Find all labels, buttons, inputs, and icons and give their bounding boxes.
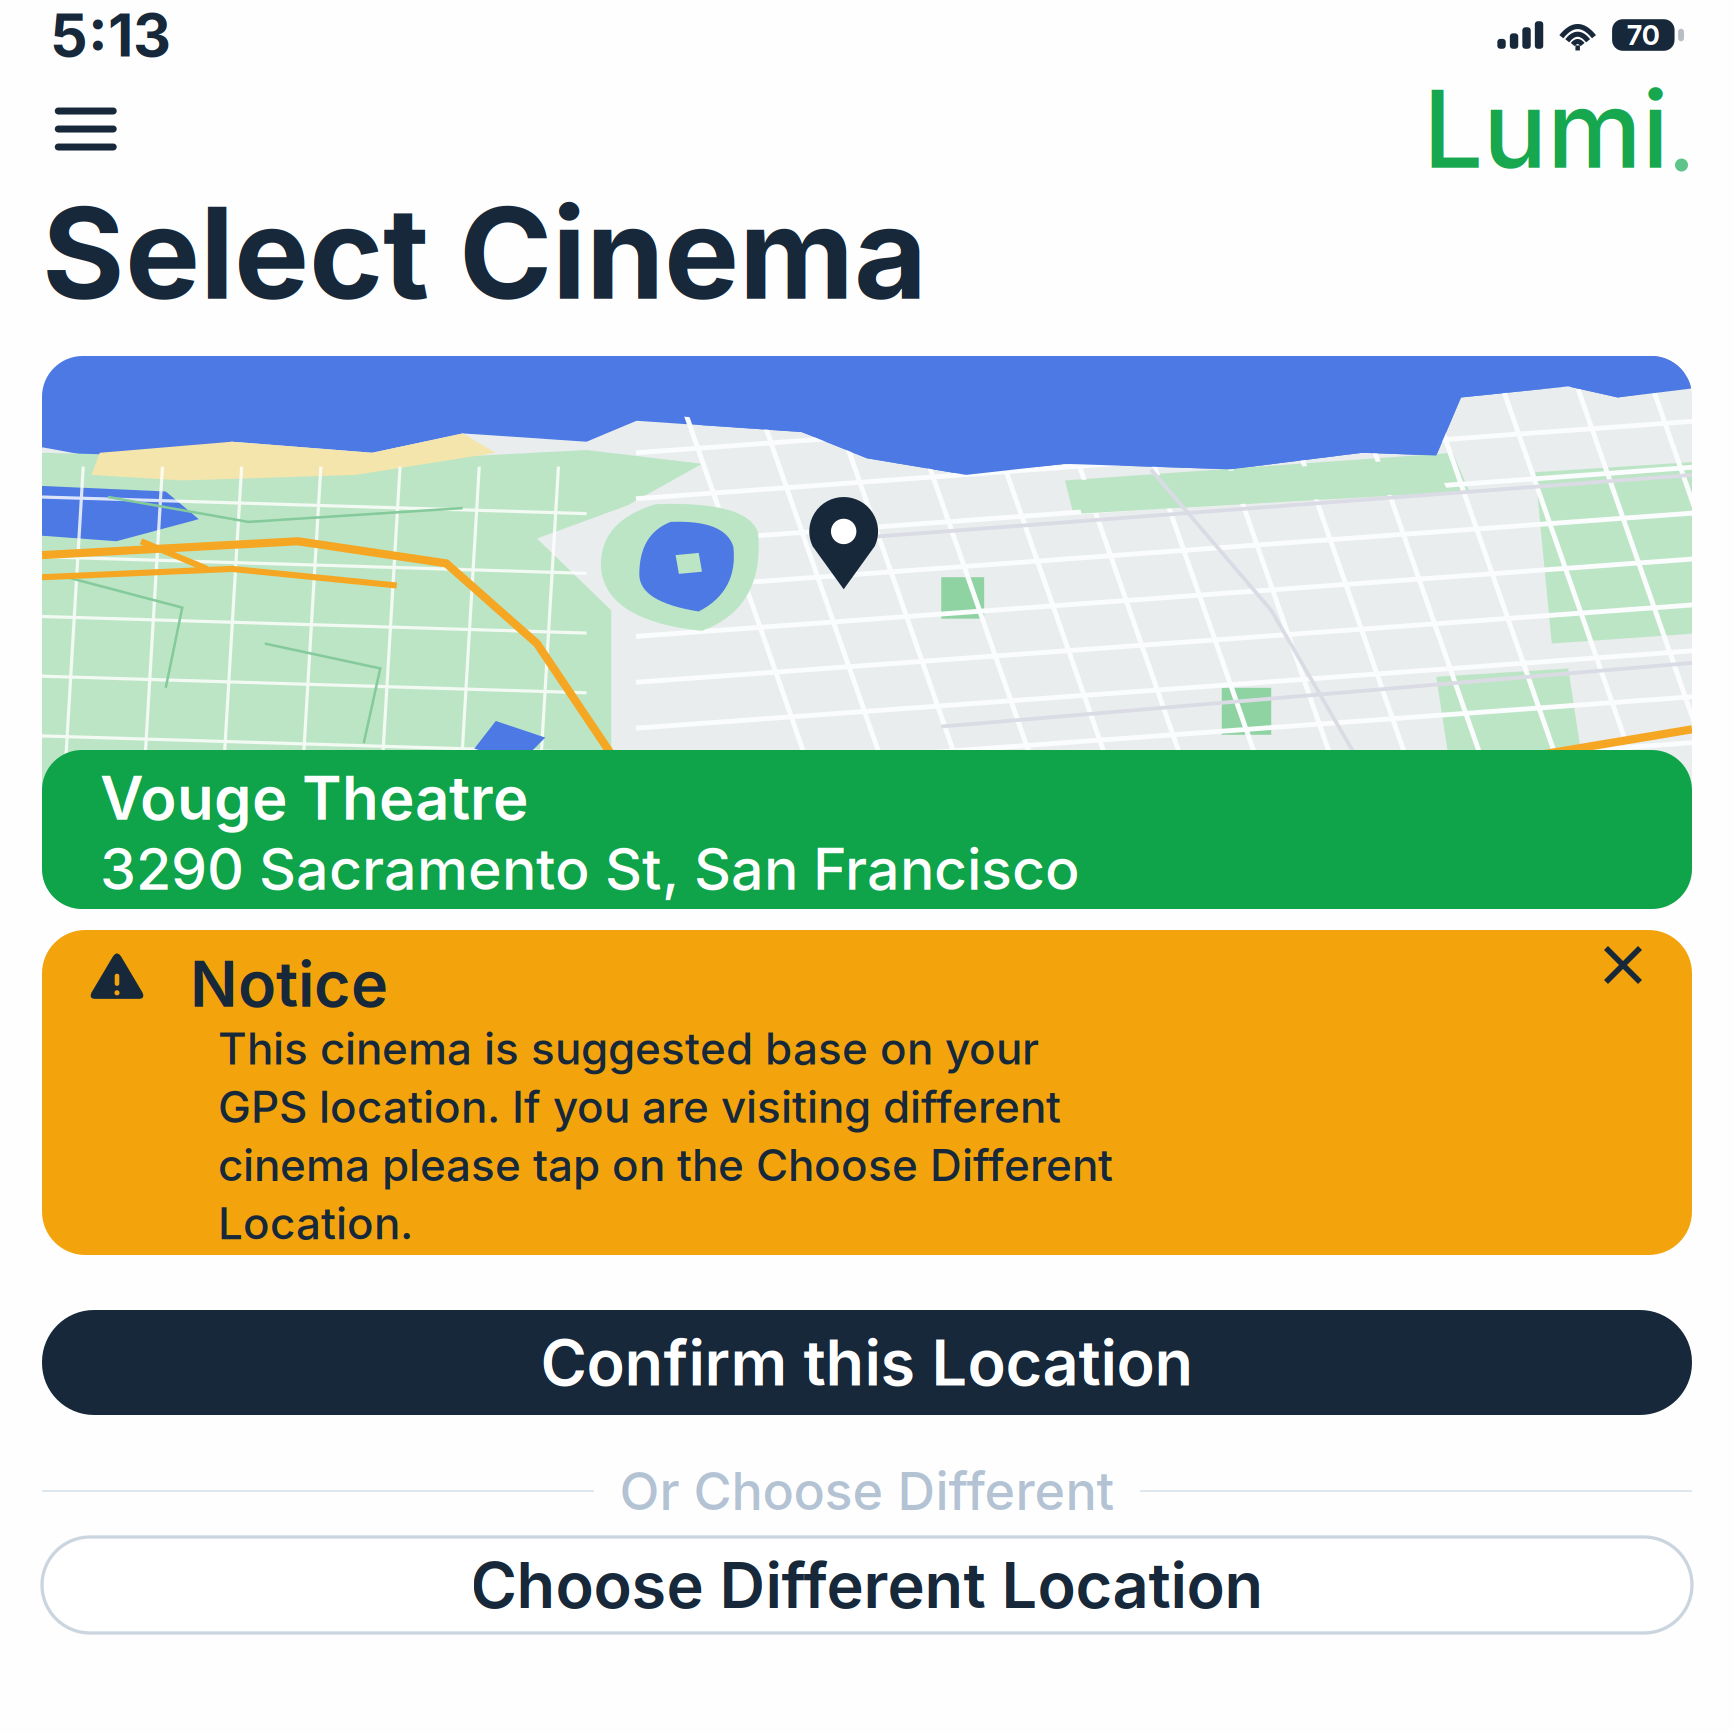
button[interactable]: Menu [42, 95, 129, 163]
button[interactable]: Dismiss notice [1596, 938, 1650, 992]
staticText: Confirm this Location [540, 1324, 1193, 1401]
staticText: Or Choose Different [619, 1459, 1114, 1522]
staticText: 5:13 [50, 0, 171, 71]
staticText: Select Cinema [42, 177, 927, 329]
button[interactable]: Choose Different Location [42, 1537, 1692, 1633]
staticText: 3290 Sacramento St, San Francisco [100, 834, 1080, 903]
staticText: This cinema is suggested base on your GP… [218, 1022, 1113, 1250]
staticText: Lumi [1423, 64, 1669, 194]
staticText: Choose Different Location [470, 1547, 1263, 1623]
staticText: Vouge Theatre [100, 761, 528, 834]
button[interactable]: Confirm this Location [42, 1310, 1692, 1415]
staticText: Notice [190, 946, 388, 1022]
staticText: 70 [1627, 18, 1660, 51]
